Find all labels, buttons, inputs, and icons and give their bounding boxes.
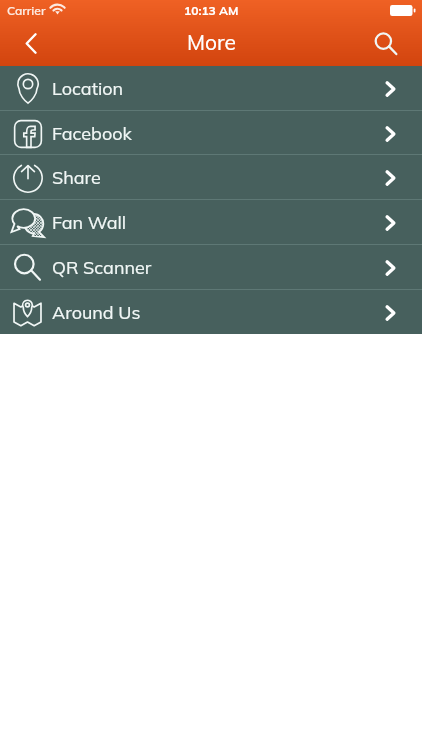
button[interactable]: Back <box>0 21 60 66</box>
staticText: Share <box>52 166 101 189</box>
button[interactable]: Around Us <box>0 290 422 335</box>
staticText: 10:13 AM <box>184 3 239 18</box>
button[interactable]: Search <box>368 21 422 66</box>
button[interactable]: Facebook <box>0 111 422 156</box>
button[interactable]: Fan Wall <box>0 200 422 245</box>
staticText: Location <box>52 77 124 100</box>
button[interactable]: QR Scanner <box>0 245 422 290</box>
staticText: Facebook <box>52 122 132 145</box>
button[interactable]: Share <box>0 155 422 200</box>
staticText: Fan Wall <box>52 211 127 234</box>
staticText: Carrier <box>7 3 46 18</box>
staticText: QR Scanner <box>52 256 152 279</box>
staticText: Around Us <box>52 301 141 324</box>
button[interactable]: Location <box>0 66 422 111</box>
staticText: More <box>187 29 236 55</box>
